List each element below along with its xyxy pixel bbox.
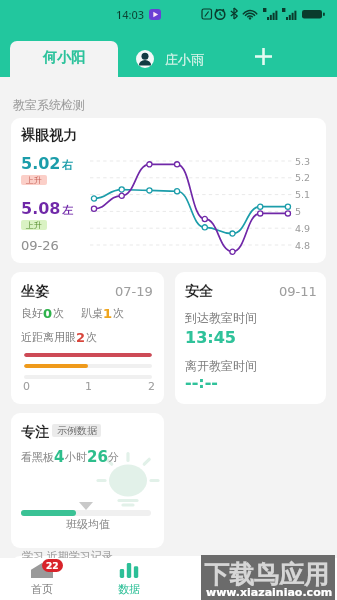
staticText: 近距离用眼 [21,330,76,344]
staticText: 专注 [21,424,49,442]
staticText: www.xiazainiao.com [206,586,333,599]
staticText: 5.2 [295,172,311,183]
button[interactable]: 安全 [175,272,326,404]
button[interactable]: 数据 [99,558,159,600]
staticText: 5.3 [295,156,311,167]
button[interactable]: 22 [12,558,72,600]
staticText: 示例数据 [57,424,97,437]
button[interactable]: 坐姿 [11,272,164,404]
staticText: 数据 [118,582,140,596]
staticText: 26 [87,448,108,465]
button[interactable]: 何小阳 [10,41,118,77]
staticText: 4 [54,448,65,465]
staticText: 离开教室时间 [185,358,257,373]
staticText: 0 [43,306,53,321]
staticText: 右 [62,158,73,172]
staticText: 1 [85,380,92,393]
staticText: 09-11 [279,284,317,299]
staticText: 0 [23,380,30,393]
staticText: --:-- [185,373,218,392]
staticText: 左 [62,203,73,217]
staticText: 安全 [185,283,213,301]
staticText: 次 [113,306,124,320]
staticText: 坐姿 [21,283,49,301]
staticText: 4.9 [295,223,311,234]
staticText: 5.08 [21,199,61,218]
staticText: 上升 [26,220,42,230]
staticText: 下载鸟应用 [204,559,329,590]
staticText: 看黑板 [21,450,54,464]
button[interactable]: 裸眼视力 [11,118,326,263]
staticText: 5 [295,206,302,217]
staticText: 学习 近期学习记录 [22,548,113,563]
button[interactable]: 专注 [11,413,164,548]
staticText: 良好 [21,306,43,320]
staticText: 到达教室时间 [185,310,257,325]
button[interactable]: Add student [246,39,281,74]
staticText: 5.02 [21,154,61,173]
staticText: 首页 [31,582,53,596]
staticText: 何小阳 [43,49,85,67]
staticText: 教室系统检测 [13,97,85,112]
staticText: 庄小雨 [165,51,204,67]
staticText: 上升 [26,175,42,185]
staticText: 1 [103,306,113,321]
staticText: 13:45 [185,328,236,347]
staticText: 分 [108,450,119,464]
staticText: 14:03 [116,7,145,22]
staticText: 5.1 [295,189,311,200]
staticText: 班级均值 [66,517,110,531]
staticText: 22 [46,561,59,571]
staticText: 07-19 [115,284,153,299]
staticText: 次 [53,306,64,320]
staticText: 2 [148,380,155,393]
staticText: 2 [76,330,86,345]
staticText: 趴桌 [81,306,103,320]
staticText: 次 [86,330,97,344]
button[interactable]: 庄小雨 [136,48,204,70]
staticText: 4.8 [295,240,311,251]
staticText: 小时 [65,450,87,464]
staticText: 裸眼视力 [21,127,77,145]
staticText: 09-26 [21,238,59,253]
